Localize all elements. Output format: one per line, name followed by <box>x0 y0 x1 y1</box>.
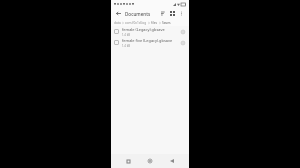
button[interactable]: com.f0x1d.log <box>125 21 147 25</box>
button[interactable]: Saves <box>162 21 171 25</box>
button[interactable]: Recents <box>123 156 133 166</box>
staticText: 1.4 kB <box>122 33 130 37</box>
staticText: female (Legacy).gbsave <box>122 27 165 32</box>
button[interactable]: File options <box>179 39 186 46</box>
button[interactable]: More options <box>177 9 186 18</box>
button[interactable]: Select female (Legacy).gbsave <box>111 26 189 37</box>
staticText: files <box>151 21 158 25</box>
button[interactable]: Select female five (Legacy).gbsave <box>111 37 189 48</box>
button[interactable]: View options <box>168 9 177 18</box>
button[interactable]: File options <box>179 28 186 35</box>
staticText: 1.4 kB <box>122 44 130 48</box>
button[interactable]: Sort <box>159 9 168 18</box>
staticText: female five (Legacy).gbsave <box>122 38 173 43</box>
button[interactable]: Select female five (Legacy).gbsave <box>114 40 119 45</box>
button[interactable]: Select female (Legacy).gbsave <box>114 29 119 34</box>
staticText: com.f0x1d.log <box>125 21 147 25</box>
button[interactable]: Back <box>167 156 177 166</box>
staticText: data <box>114 21 121 25</box>
button[interactable]: Back <box>114 9 123 18</box>
staticText: Documents <box>125 11 151 17</box>
button[interactable]: files <box>151 21 158 25</box>
staticText: Saves <box>162 21 171 25</box>
button[interactable]: data <box>114 21 121 25</box>
button[interactable]: Home <box>145 156 155 166</box>
button[interactable]: Documents <box>125 11 159 17</box>
